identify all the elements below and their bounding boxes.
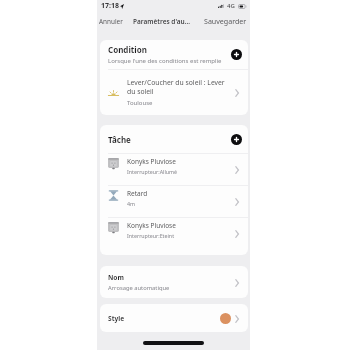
- staticText: 17:18: [101, 1, 119, 11]
- button[interactable]: Konyks Pluviose: [100, 154, 248, 185]
- button[interactable]: Sauvegarder: [204, 16, 247, 26]
- staticText: Lever/Coucher du soleil : Lever du solei…: [127, 78, 229, 96]
- staticText: Nom: [108, 273, 124, 282]
- staticText: Style: [108, 314, 220, 323]
- other: Ajouter: [231, 49, 242, 60]
- button[interactable]: Annuler: [99, 17, 123, 26]
- staticText: Annuler: [99, 17, 123, 26]
- staticText: Konyks Pluviose: [127, 221, 176, 230]
- button[interactable]: Lever/Coucher du soleil : Lever du solei…: [100, 70, 248, 115]
- staticText: Interrupteur:Eteint: [127, 232, 175, 239]
- staticText: 4G: [227, 2, 235, 10]
- button[interactable]: Style: [100, 304, 248, 332]
- staticText: Lorsque l'une des conditions est remplie: [108, 57, 222, 65]
- staticText: Retard: [127, 189, 148, 198]
- button[interactable]: Konyks Pluviose: [100, 218, 248, 255]
- button[interactable]: Paramètres d'au...: [133, 17, 191, 26]
- staticText: Arrosage automatique: [108, 284, 170, 292]
- other: Ajouter: [231, 134, 242, 145]
- staticText: Condition: [108, 44, 147, 55]
- staticText: Toulouse: [127, 99, 153, 107]
- button[interactable]: Ajouter: [231, 49, 242, 60]
- button[interactable]: Ajouter: [231, 134, 242, 145]
- button[interactable]: Retard: [100, 186, 248, 217]
- staticText: Sauvegarder: [204, 16, 247, 26]
- staticText: Interrupteur:Allumé: [127, 168, 177, 175]
- staticText: 4m: [127, 200, 135, 207]
- button[interactable]: Nom: [100, 266, 248, 298]
- staticText: Konyks Pluviose: [127, 157, 176, 166]
- staticText: Tâche: [108, 134, 231, 145]
- staticText: Paramètres d'au...: [133, 17, 191, 26]
